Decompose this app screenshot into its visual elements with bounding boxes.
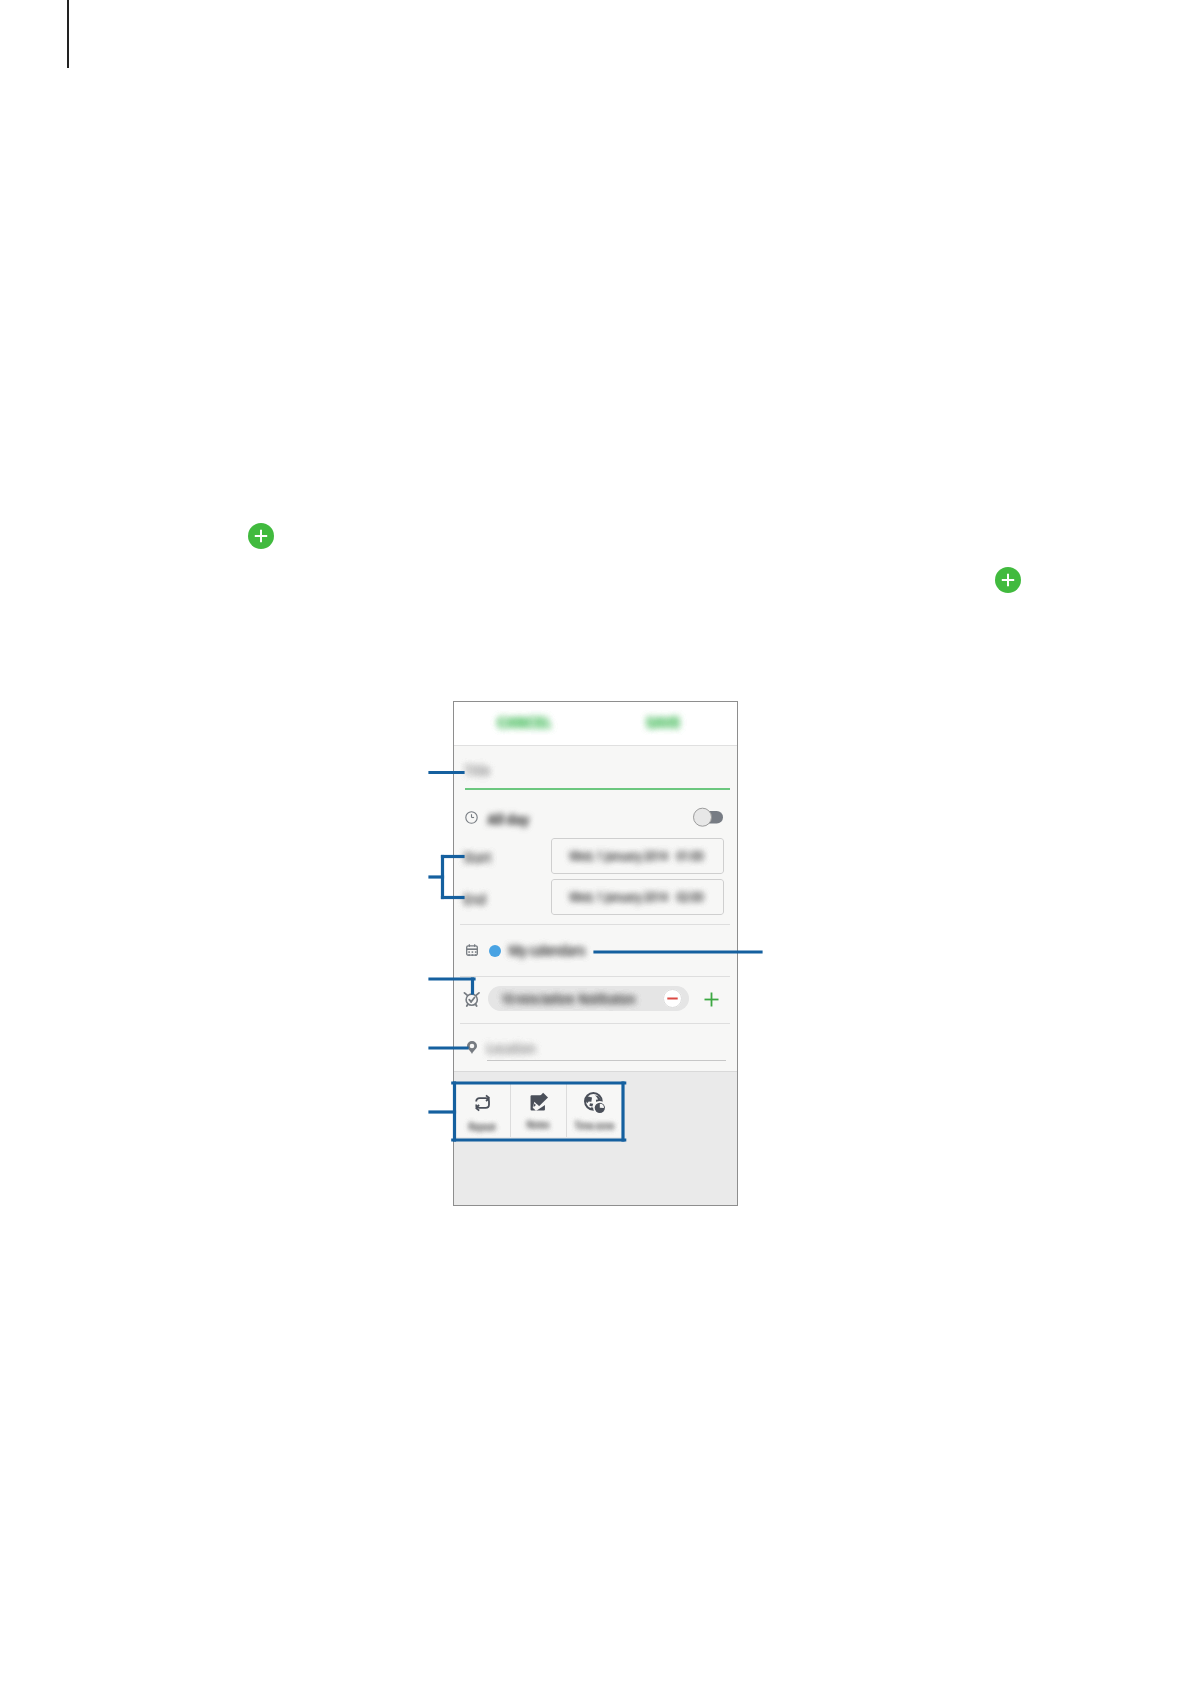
button[interactable]: Time zone [567,1083,622,1137]
staticText: Location [487,1040,536,1056]
staticText: 02:00 [677,890,704,904]
staticText: End [464,891,486,907]
staticText: Location [487,1040,536,1056]
button[interactable]: Add notification [702,990,721,1009]
button[interactable]: Wed, 1 January 2014 [551,879,724,915]
staticText: 10 mins before Notification [502,992,635,1006]
staticText: Notes [527,1119,550,1130]
button[interactable]: Notes [511,1083,566,1137]
staticText: 01:00 [677,849,704,863]
staticText: CANCEL [498,713,552,730]
staticText: Wed, 1 January 2014 [570,849,668,863]
staticText: My calendars [509,942,585,959]
staticText: Start [464,849,491,865]
staticText: 10 mins before Notification [502,992,635,1006]
staticText: All day [488,811,529,828]
staticText: My calendars [509,942,585,959]
staticText: 02:00 [677,890,704,904]
staticText: Repeat [469,1121,496,1132]
button[interactable]: 10 mins before Notification [488,986,689,1011]
button[interactable] [454,1031,737,1071]
button[interactable] [454,929,737,974]
staticText: SAVE [647,713,681,730]
staticText: Title [465,762,490,779]
staticText: 01:00 [677,849,704,863]
staticText: SAVE [647,713,681,730]
staticText: Repeat [469,1121,496,1132]
staticText: Wed, 1 January 2014 [570,890,668,904]
staticText: 10 mins before Notification [502,992,635,1006]
staticText: Time zone [575,1120,614,1131]
staticText: End [464,891,486,907]
staticText: 01:00 [677,849,704,863]
staticText: Wed, 1 January 2014 [570,849,668,863]
staticText: Notes [527,1119,550,1130]
staticText: CANCEL [498,713,552,730]
staticText: 02:00 [677,890,704,904]
staticText: Notes [527,1119,550,1130]
button[interactable]: SAVE [634,707,694,735]
button[interactable]: Title [454,751,737,791]
staticText: Time zone [575,1120,614,1131]
staticText: Repeat [469,1121,496,1132]
staticText: Wed, 1 January 2014 [570,890,668,904]
staticText: 10 mins before Notification [502,992,635,1006]
button[interactable]: CANCEL [485,707,565,735]
button[interactable]: Remove notification [663,989,682,1008]
button[interactable]: Add [995,567,1021,593]
staticText: End [464,891,486,907]
staticText: Wed, 1 January 2014 [570,890,668,904]
button[interactable]: All day toggle [692,805,726,829]
staticText: Wed, 1 January 2014 [570,849,668,863]
staticText: Start [464,849,491,865]
button[interactable]: Wed, 1 January 2014 [551,838,724,874]
staticText: Title [465,762,490,779]
button[interactable] [454,797,684,839]
staticText: Time zone [575,1120,614,1131]
staticText: Title [465,762,490,779]
button[interactable]: Repeat [455,1083,510,1137]
staticText: All day [488,811,529,828]
staticText: Location [487,1040,536,1056]
staticText: CANCEL [498,713,552,730]
staticText: SAVE [647,713,681,730]
staticText: Start [464,849,491,865]
button[interactable]: Add [248,523,274,549]
staticText: My calendars [509,942,585,959]
